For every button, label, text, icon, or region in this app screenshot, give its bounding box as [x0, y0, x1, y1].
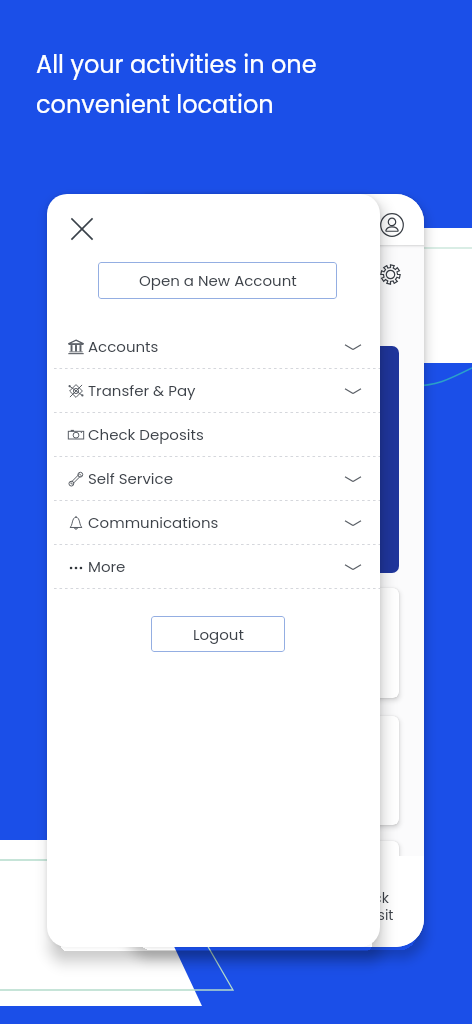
staticText: Transfer & Pay	[88, 380, 196, 401]
staticText: Logout	[193, 624, 244, 645]
staticText: Open a New Account	[139, 270, 297, 291]
button[interactable]: Self Service	[47, 457, 380, 500]
button[interactable]: More	[47, 545, 380, 588]
staticText: Accounts	[88, 336, 159, 357]
staticText: Check Deposits	[88, 424, 204, 445]
button[interactable]: Logout	[151, 616, 285, 652]
staticText: More	[88, 556, 126, 577]
staticText: All your activities in one convenient lo…	[36, 48, 317, 122]
button[interactable]: Communications	[47, 501, 380, 544]
button[interactable]: Close menu	[62, 209, 102, 249]
button[interactable]: Open a New Account	[98, 262, 337, 299]
staticText: Check Deposit	[317, 888, 417, 925]
button[interactable]: Accounts	[47, 325, 380, 368]
button[interactable]: Check Deposits	[47, 413, 380, 456]
button[interactable]: Transfer & Pay	[47, 369, 380, 412]
staticText: Communications	[88, 512, 219, 533]
staticText: Self Service	[88, 468, 173, 489]
